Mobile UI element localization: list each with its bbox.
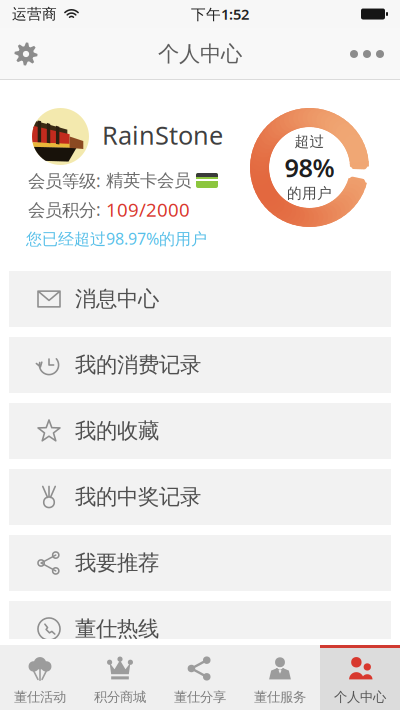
button[interactable]: 我要推荐 bbox=[9, 535, 391, 591]
staticText: 积分商城 bbox=[94, 689, 146, 705]
staticText: 消息中心 bbox=[75, 286, 159, 312]
button[interactable]: 董仕服务 bbox=[240, 645, 320, 710]
staticText: 运营商 bbox=[12, 5, 57, 23]
staticText: 我要推荐 bbox=[75, 550, 159, 576]
button[interactable]: 积分商城 bbox=[80, 645, 160, 710]
button[interactable]: 个人中心 bbox=[320, 645, 400, 710]
staticText: 个人中心 bbox=[158, 41, 242, 67]
staticText: 109/2000 bbox=[106, 197, 190, 222]
button[interactable]: 董仕分享 bbox=[160, 645, 240, 710]
staticText: RainStone bbox=[102, 118, 223, 152]
staticText: 董仕活动 bbox=[14, 689, 66, 705]
staticText: 超过 bbox=[294, 133, 324, 151]
button[interactable]: 更多 bbox=[334, 28, 400, 80]
staticText: 会员积分: bbox=[28, 198, 106, 221]
staticText: 我的消费记录 bbox=[75, 352, 201, 378]
staticText: 我的中奖记录 bbox=[75, 484, 201, 510]
staticText: 个人中心 bbox=[334, 689, 386, 705]
button[interactable]: 我的收藏 bbox=[9, 403, 391, 459]
staticText: 董仕服务 bbox=[254, 689, 306, 705]
staticText: 我的收藏 bbox=[75, 418, 159, 444]
staticText: 您已经超过98.97%的用户 bbox=[26, 228, 207, 249]
button[interactable]: 设置 bbox=[0, 28, 52, 80]
button[interactable]: 董仕热线 bbox=[9, 601, 391, 657]
staticText: 董仕热线 bbox=[75, 616, 159, 642]
staticText: 98% bbox=[284, 151, 334, 184]
button[interactable]: 董仕活动 bbox=[0, 645, 80, 710]
staticText: 的用户 bbox=[287, 184, 332, 202]
staticText: 精英卡会员 bbox=[106, 170, 196, 191]
staticText: 会员等级: bbox=[28, 169, 106, 192]
staticText: 下午1:52 bbox=[191, 4, 249, 24]
button[interactable]: 我的消费记录 bbox=[9, 337, 391, 393]
button[interactable]: 我的中奖记录 bbox=[9, 469, 391, 525]
staticText: 董仕分享 bbox=[174, 689, 226, 705]
button[interactable]: 消息中心 bbox=[9, 271, 391, 327]
